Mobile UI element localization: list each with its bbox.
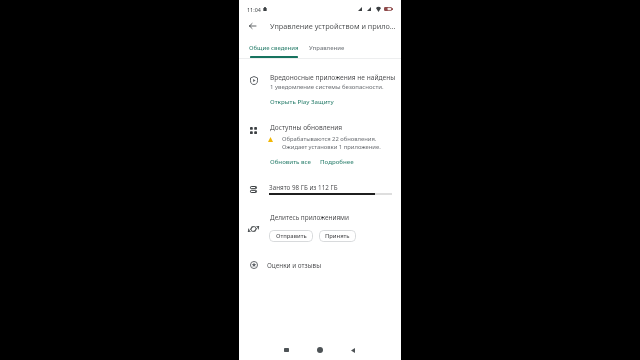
staticText: Принять: [325, 232, 350, 240]
staticText: Отправить: [276, 232, 307, 240]
button[interactable]: Принять: [319, 230, 356, 242]
button[interactable]: Home: [312, 342, 328, 358]
staticText: 11:04: [247, 6, 261, 13]
staticText: Занято 98 ГБ из 112 ГБ: [269, 183, 338, 192]
staticText: Оценки и отзывы: [267, 261, 322, 270]
staticText: Ожидает установки 1 приложение.: [282, 143, 381, 151]
staticText: Подробнее: [320, 157, 354, 165]
staticText: Общие сведения: [249, 44, 299, 52]
button[interactable]: Back: [243, 17, 261, 35]
staticText: 1 уведомление системы безопасности.: [270, 83, 384, 91]
button[interactable]: Отправить: [269, 230, 313, 242]
staticText: Управление: [309, 44, 345, 52]
staticText: Обновить все: [270, 157, 312, 165]
button[interactable]: Оценки и отзывы: [239, 256, 401, 274]
button[interactable]: Открыть Play Защиту: [268, 95, 336, 107]
staticText: Обрабатываются 22 обновления.: [282, 135, 377, 143]
staticText: Управление устройством и прило…: [270, 21, 396, 31]
staticText: Открыть Play Защиту: [270, 97, 334, 105]
button[interactable]: Recent apps: [278, 342, 294, 358]
button[interactable]: Back: [345, 342, 361, 358]
button[interactable]: Подробнее: [318, 155, 356, 167]
button[interactable]: Управление: [305, 39, 349, 56]
button[interactable]: [239, 178, 401, 200]
button[interactable]: Обновить все: [268, 155, 314, 167]
staticText: Вредоносные приложения не найдены: [270, 73, 396, 82]
staticText: Доступны обновления: [270, 123, 343, 132]
button[interactable]: Общие сведения: [247, 39, 300, 56]
staticText: Делитесь приложениями: [270, 213, 350, 222]
